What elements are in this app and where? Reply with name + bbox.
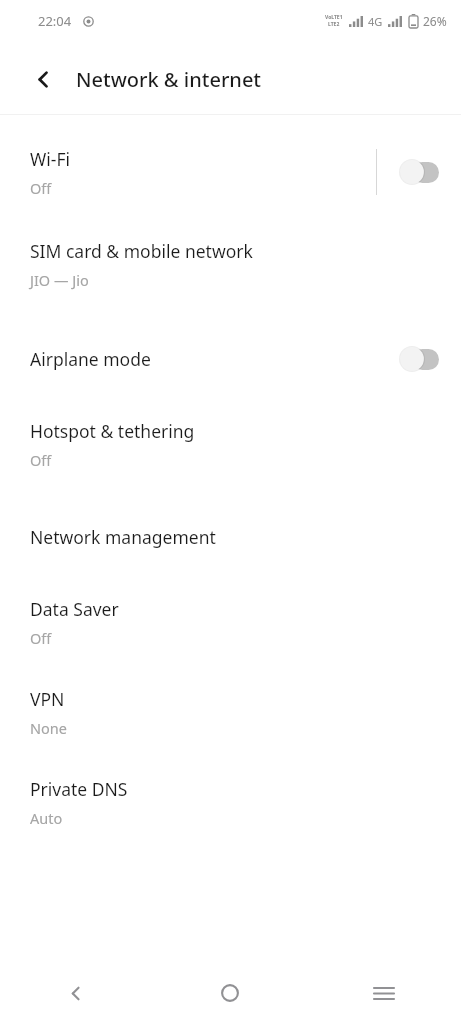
button[interactable]: Private DNS: [0, 770, 461, 834]
staticText: Network & internet: [76, 66, 262, 93]
button[interactable]: Back: [22, 58, 64, 100]
button[interactable]: Airplane mode: [0, 337, 461, 381]
staticText: Hotspot & tethering: [30, 419, 195, 443]
staticText: LTE2: [328, 21, 340, 28]
staticText: Off: [30, 450, 52, 470]
staticText: Private DNS: [30, 777, 128, 801]
button[interactable]: Home: [153, 962, 307, 1024]
staticText: 4G: [368, 14, 383, 29]
button[interactable]: Network management: [0, 515, 461, 559]
staticText: JIO — Jio: [30, 270, 89, 290]
staticText: Off: [30, 178, 52, 198]
button[interactable]: Toggle: [399, 158, 441, 186]
button[interactable]: SIM card & mobile network: [0, 232, 461, 296]
staticText: Network management: [30, 525, 216, 549]
staticText: Wi-Fi: [30, 147, 71, 171]
staticText: Auto: [30, 808, 63, 828]
staticText: Airplane mode: [30, 347, 151, 371]
button[interactable]: Recent apps: [307, 962, 461, 1024]
button[interactable]: Toggle: [399, 345, 441, 373]
staticText: VoLTE1: [325, 14, 343, 21]
button[interactable]: Hotspot & tethering: [0, 412, 461, 476]
staticText: SIM card & mobile network: [30, 239, 253, 263]
staticText: Data Saver: [30, 597, 119, 621]
button[interactable]: Back: [0, 962, 153, 1024]
staticText: Off: [30, 628, 52, 648]
button[interactable]: Data Saver: [0, 590, 461, 654]
button[interactable]: VPN: [0, 680, 461, 744]
staticText: 26%: [423, 13, 447, 29]
button[interactable]: Wi-Fi: [0, 140, 461, 204]
staticText: None: [30, 718, 67, 738]
staticText: VPN: [30, 687, 65, 711]
staticText: 22:04: [38, 12, 72, 30]
